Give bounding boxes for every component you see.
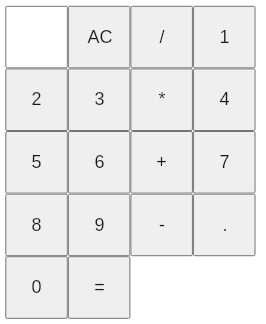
button[interactable]: Six [68, 131, 131, 194]
staticText: / [159, 27, 165, 47]
button[interactable]: Divide [130, 6, 193, 69]
staticText: 1 [219, 27, 230, 47]
staticText: * [158, 89, 166, 109]
staticText: 6 [94, 152, 105, 172]
staticText: 4 [219, 89, 230, 109]
other: Calculator display [5, 6, 68, 69]
button[interactable]: Four [193, 68, 256, 131]
staticText: 5 [31, 152, 42, 172]
staticText: . [222, 215, 228, 235]
button[interactable]: Equals [68, 256, 131, 319]
staticText: AC [87, 27, 113, 47]
button[interactable]: Two [5, 68, 68, 131]
staticText: 7 [219, 152, 230, 172]
staticText: - [159, 215, 165, 235]
staticText: 3 [94, 89, 105, 109]
staticText: 8 [31, 215, 42, 235]
button[interactable]: Minus [130, 194, 193, 257]
staticText: 2 [31, 89, 42, 109]
button[interactable]: Five [5, 131, 68, 194]
staticText: = [94, 277, 105, 297]
button[interactable]: Zero [5, 256, 68, 319]
button[interactable]: Plus [130, 131, 193, 194]
button[interactable]: Seven [193, 131, 256, 194]
button[interactable]: Three [68, 68, 131, 131]
button[interactable]: Decimal point [193, 194, 256, 257]
button[interactable]: Multiply [130, 68, 193, 131]
staticText: 0 [31, 277, 42, 297]
button[interactable]: Eight [5, 194, 68, 257]
button[interactable]: All clear [68, 6, 131, 69]
staticText: + [156, 152, 167, 172]
staticText: 9 [94, 215, 105, 235]
button[interactable]: One [193, 6, 256, 69]
button[interactable]: Nine [68, 194, 131, 257]
